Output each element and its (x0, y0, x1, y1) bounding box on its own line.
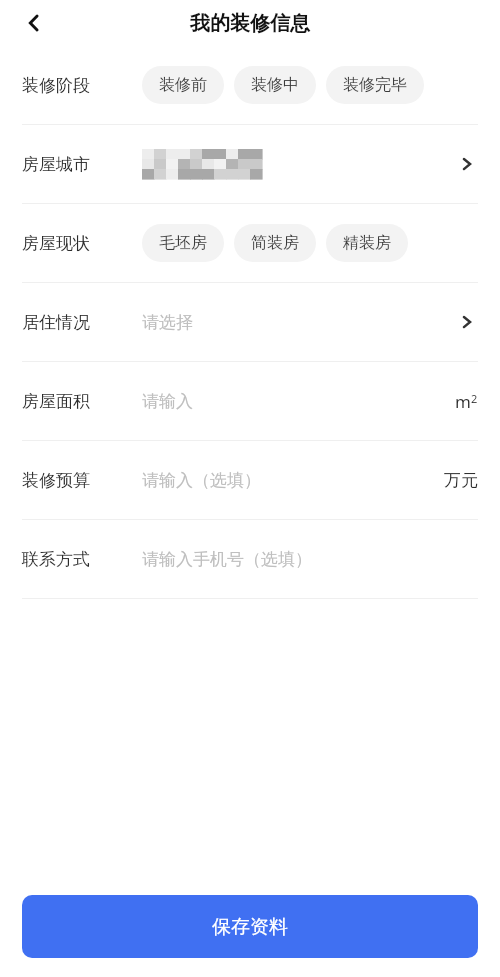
staticText: 居住情况 (22, 312, 90, 333)
button[interactable]: 装修阶段 (0, 46, 500, 124)
button[interactable]: 简装房 (234, 224, 316, 262)
staticText: 装修前 (159, 75, 207, 95)
staticText: 房屋城市 (22, 154, 90, 175)
button[interactable]: 装修预算 (0, 441, 500, 519)
button[interactable]: 装修完毕 (326, 66, 424, 104)
staticText: 装修阶段 (22, 75, 90, 96)
staticText: 房屋面积 (22, 391, 90, 412)
staticText: 装修中 (251, 75, 299, 95)
staticText: 保存资料 (212, 915, 288, 939)
staticText: 毛坯房 (159, 233, 207, 253)
staticText: 精装房 (343, 233, 391, 253)
staticText: 装修完毕 (343, 75, 407, 95)
button[interactable]: 装修中 (234, 66, 316, 104)
button[interactable]: 房屋面积 (0, 362, 500, 440)
staticText: 万元 (444, 470, 478, 491)
staticText: 简装房 (251, 233, 299, 253)
button[interactable]: 精装房 (326, 224, 408, 262)
button[interactable]: 装修前 (142, 66, 224, 104)
staticText: 房屋现状 (22, 233, 90, 254)
staticText: 请输入 (142, 391, 193, 412)
staticText: 装修预算 (22, 470, 90, 491)
button[interactable]: 房屋现状 (0, 204, 500, 282)
button[interactable]: 居住情况 (0, 283, 500, 361)
button[interactable]: 联系方式 (0, 520, 500, 598)
staticText: 我的装修信息 (190, 11, 310, 36)
button[interactable]: 保存资料 (22, 895, 478, 958)
button[interactable]: 房屋城市 (0, 125, 500, 203)
staticText: 请输入手机号（选填） (142, 549, 312, 570)
button[interactable]: Back (14, 3, 54, 43)
staticText: 联系方式 (22, 549, 90, 570)
staticText: 请选择 (142, 312, 193, 333)
button[interactable]: 毛坯房 (142, 224, 224, 262)
staticText: 请输入（选填） (142, 470, 261, 491)
staticText: m2 (455, 390, 478, 413)
